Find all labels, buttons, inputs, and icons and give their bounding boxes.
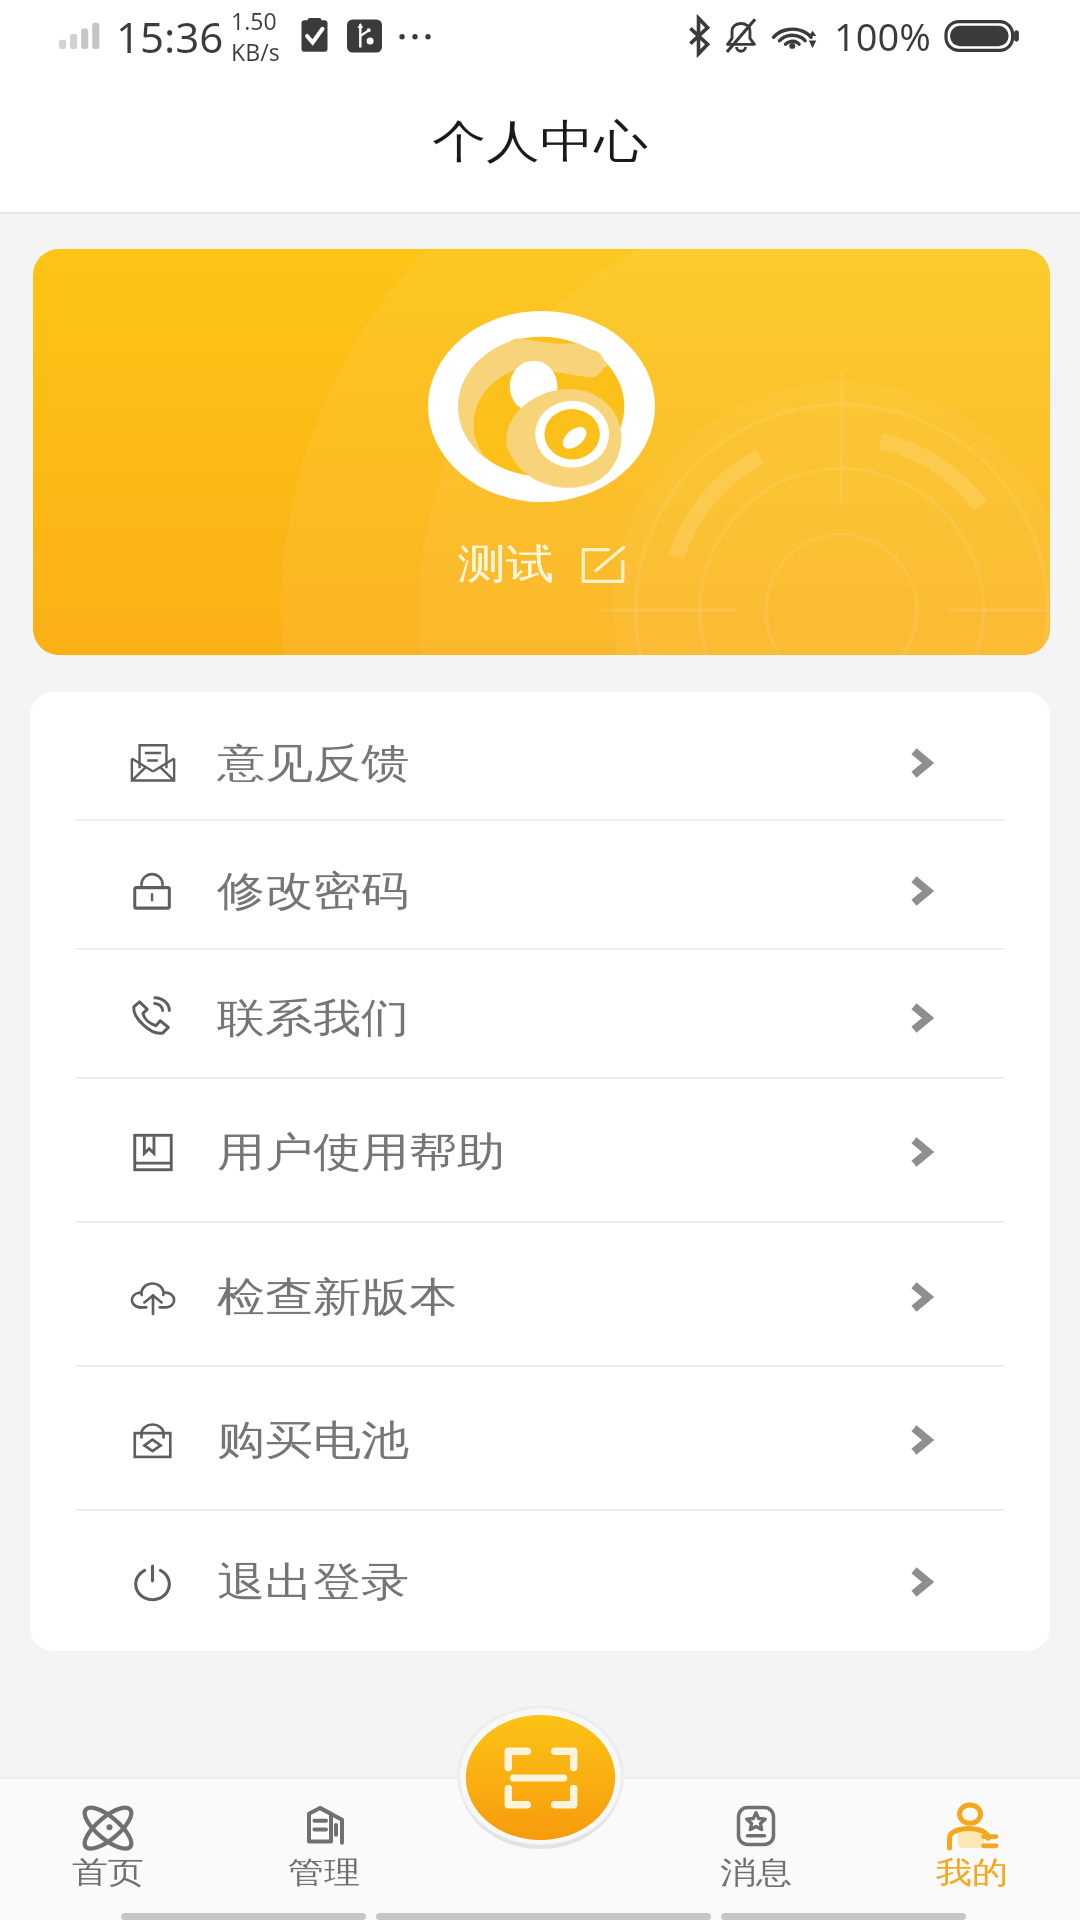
staticText: 购买电池 <box>217 1414 409 1465</box>
button[interactable]: 联系我们 <box>30 950 1050 1079</box>
staticText: 1.50 <box>231 5 277 36</box>
staticText: 100% <box>834 10 931 62</box>
staticText: 用户使用帮助 <box>217 1126 505 1177</box>
staticText: 15:36 <box>116 8 224 65</box>
staticText: 退出登录 <box>217 1556 409 1607</box>
staticText: 个人中心 <box>432 113 648 170</box>
button[interactable]: 管理 <box>216 1777 432 1920</box>
button[interactable]: 用户使用帮助 <box>30 1079 1050 1223</box>
button[interactable]: 检查新版本 <box>30 1223 1050 1367</box>
button[interactable]: 退出登录 <box>30 1511 1050 1651</box>
button[interactable]: 意见反馈 <box>30 692 1050 821</box>
staticText: 首页 <box>72 1853 144 1892</box>
staticText: 我的 <box>936 1853 1008 1892</box>
button[interactable]: 消息 <box>648 1777 864 1920</box>
staticText: 测试 <box>458 538 554 589</box>
staticText: 意见反馈 <box>217 737 409 788</box>
button[interactable]: Scan <box>457 1706 624 1849</box>
button[interactable]: 我的 <box>864 1777 1080 1920</box>
staticText: 联系我们 <box>217 992 409 1043</box>
staticText: 消息 <box>720 1853 792 1892</box>
button[interactable]: 首页 <box>0 1777 216 1920</box>
button[interactable]: 修改密码 <box>30 821 1050 950</box>
button[interactable]: 购买电池 <box>30 1367 1050 1511</box>
button[interactable]: 测试 <box>33 249 1050 655</box>
staticText: KB/s <box>231 36 280 67</box>
staticText: 修改密码 <box>217 865 409 916</box>
staticText: 管理 <box>288 1853 360 1892</box>
staticText: 检查新版本 <box>217 1271 457 1322</box>
